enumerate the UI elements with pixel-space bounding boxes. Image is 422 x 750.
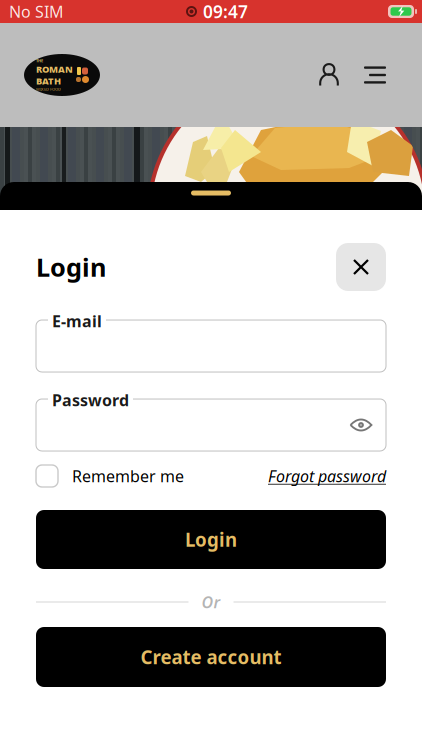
staticText: 09:47	[203, 0, 248, 23]
button[interactable]: Account	[306, 62, 352, 87]
staticText: Create account	[140, 645, 281, 669]
staticText: Remember me	[72, 465, 184, 487]
button[interactable]: Close	[336, 243, 386, 291]
staticText: Or	[201, 591, 220, 613]
staticText: No SIM	[9, 1, 64, 22]
staticText: Login	[36, 250, 106, 284]
staticText: E-mail	[52, 310, 102, 332]
staticText: Password	[52, 389, 129, 411]
staticText: THE	[36, 58, 43, 63]
button[interactable]: Create account	[36, 627, 386, 687]
button[interactable]: Menu	[352, 63, 422, 87]
button[interactable]: Show password	[350, 417, 372, 433]
button[interactable]: Forgot password	[268, 463, 386, 489]
staticText: Login	[185, 527, 237, 552]
staticText: ROMAN	[36, 63, 73, 75]
button[interactable]: Login	[36, 510, 386, 569]
button[interactable]: Remember me	[36, 463, 184, 489]
button[interactable]: The Roman Bath home	[0, 54, 100, 96]
staticText: MIXED FOOD	[36, 87, 61, 92]
staticText: Forgot password	[268, 465, 386, 487]
staticText: BATH	[36, 75, 61, 87]
